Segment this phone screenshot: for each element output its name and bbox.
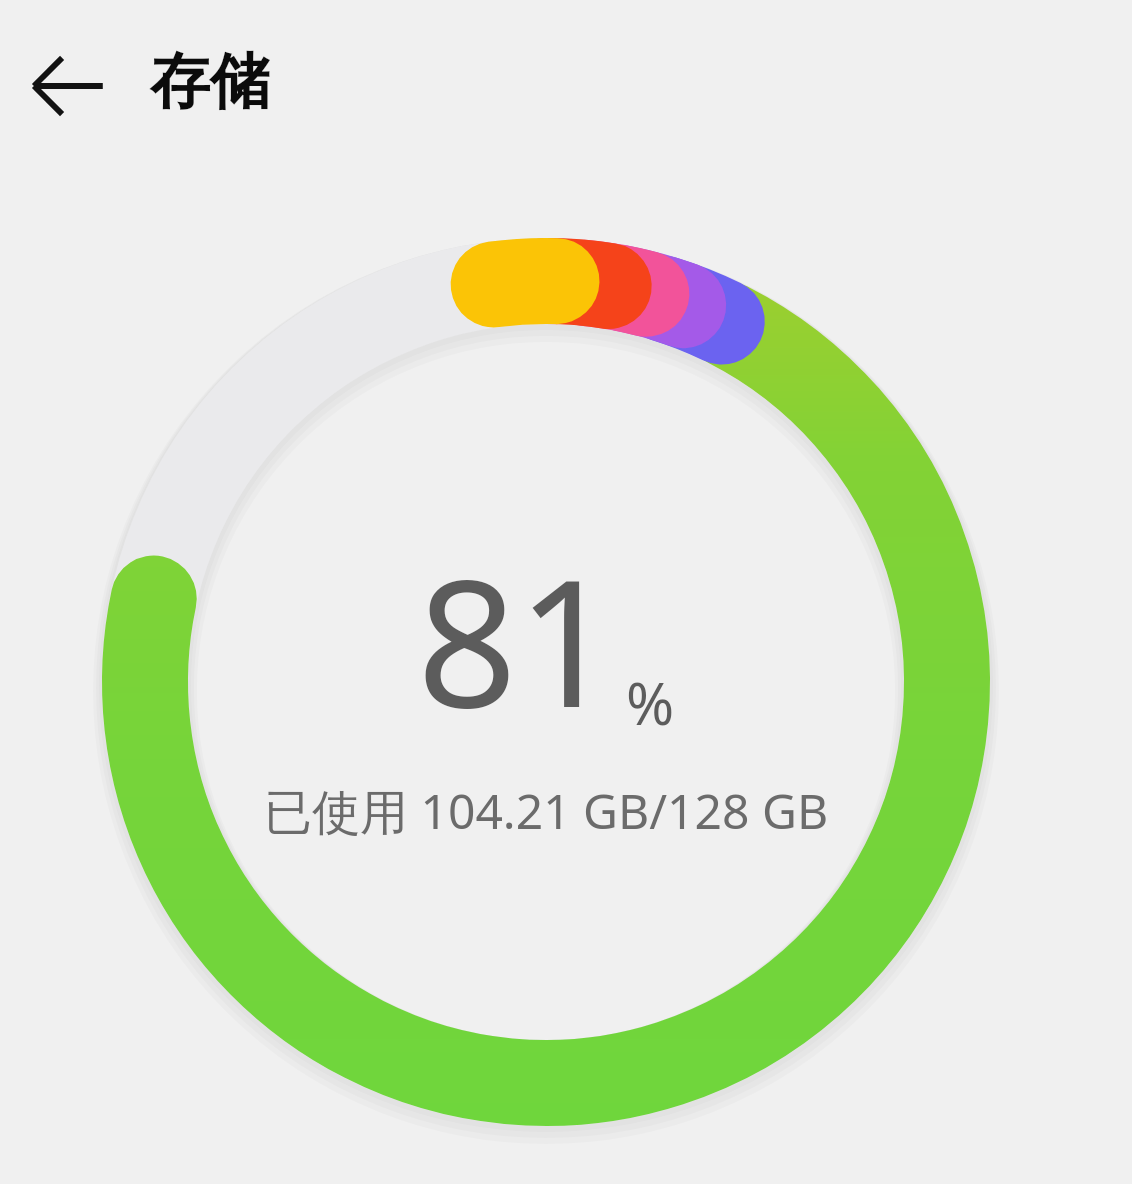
staticText: 已使用 104.21 GB/128 GB: [264, 778, 829, 844]
button[interactable]: Back: [14, 32, 122, 140]
staticText: 81: [417, 520, 618, 758]
staticText: %: [626, 663, 675, 742]
button[interactable]: 存储: [150, 44, 270, 120]
staticText: 存储: [150, 44, 270, 120]
